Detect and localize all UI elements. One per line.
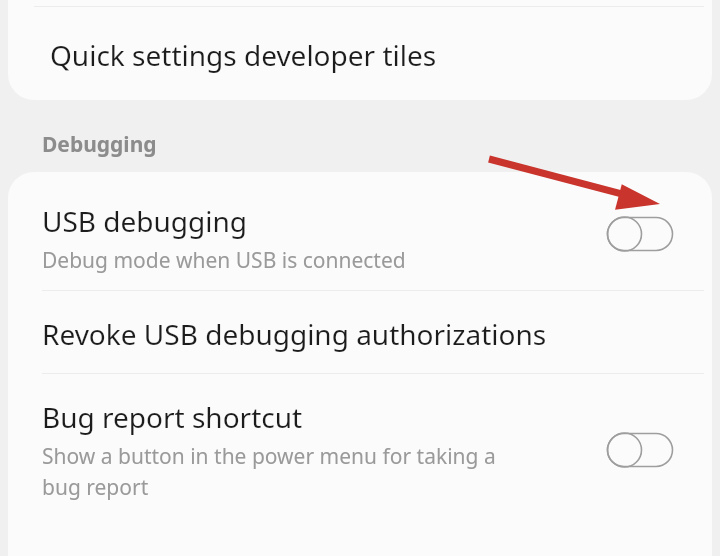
button[interactable]: Quick settings developer tiles [8, 0, 712, 100]
staticText: Show a button in the power menu for taki… [42, 442, 496, 501]
button[interactable]: Bug report shortcut [8, 374, 712, 524]
staticText: Revoke USB debugging authorizations [42, 315, 547, 353]
button[interactable]: USB debugging toggle [606, 216, 674, 252]
button[interactable]: Revoke USB debugging authorizations [8, 291, 712, 373]
staticText: Bug report shortcut [42, 398, 303, 436]
staticText: Debugging [42, 130, 157, 159]
button[interactable]: USB debugging [8, 172, 712, 290]
button[interactable]: Bug report shortcut toggle [606, 432, 674, 468]
staticText: USB debugging [42, 202, 248, 240]
staticText: Quick settings developer tiles [50, 36, 437, 74]
staticText: Debug mode when USB is connected [42, 246, 406, 275]
